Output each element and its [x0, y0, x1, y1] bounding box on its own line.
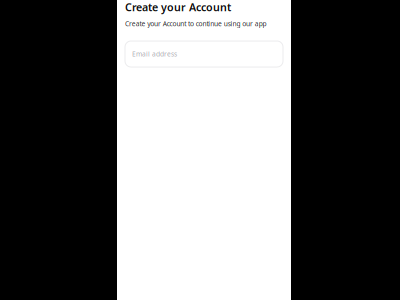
staticText: Create your Account to continue using ou… — [125, 19, 267, 28]
staticText: Email address — [132, 50, 177, 58]
staticText: Create your Account — [125, 0, 231, 14]
textField[interactable]: Email address — [132, 50, 283, 58]
